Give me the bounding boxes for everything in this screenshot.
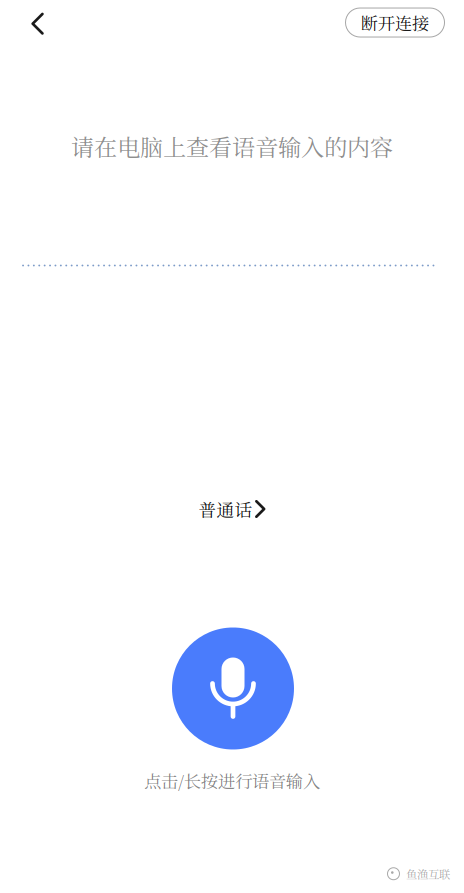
staticText: 断开连接 xyxy=(361,10,429,35)
button[interactable]: 断开连接 xyxy=(345,8,444,37)
staticText: 鱼渔互联 xyxy=(406,865,450,882)
button[interactable]: Voice input xyxy=(172,627,294,749)
button[interactable]: 普通话 xyxy=(177,492,287,526)
staticText: 点击/长按进行语音输入 xyxy=(144,768,320,793)
staticText: 普通话 xyxy=(199,496,253,522)
button[interactable]: Back xyxy=(16,2,60,46)
staticText: 请在电脑上查看语音输入的内容 xyxy=(71,129,393,162)
